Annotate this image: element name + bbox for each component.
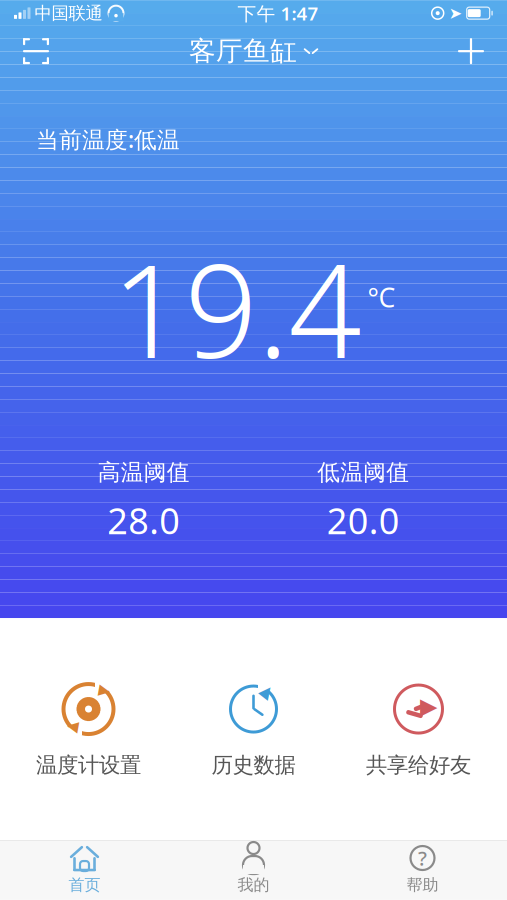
staticText: ▲ (100, 683, 111, 699)
staticText: 我的 (237, 875, 269, 895)
button[interactable]: 客厅鱼缸 (179, 29, 328, 73)
button[interactable]: ▶ (336, 672, 501, 786)
staticText: 20.0 (327, 496, 400, 544)
staticText: °C (367, 279, 395, 315)
button[interactable]: ▲ (6, 672, 171, 786)
staticText: 历史数据 (211, 752, 295, 778)
staticText: ? (418, 845, 427, 871)
staticText: 客厅鱼缸 (189, 35, 297, 68)
staticText: ▲ (66, 719, 77, 735)
button[interactable]: 首页 (0, 840, 169, 900)
button[interactable]: 添加设备 (449, 29, 493, 73)
staticText: 中国联通 (34, 2, 102, 24)
staticText: 首页 (68, 875, 100, 895)
staticText: 下午 1:47 (238, 1, 319, 26)
staticText: 帮助 (406, 875, 438, 895)
button[interactable]: ? (338, 840, 507, 900)
button[interactable]: 我的 (169, 840, 338, 900)
staticText: 温度计设置 (36, 752, 141, 778)
staticText: 共享给好友 (366, 752, 471, 778)
staticText: 28.0 (107, 496, 180, 544)
staticText: 高温阈值 (98, 458, 190, 486)
button[interactable]: ▲ (171, 672, 336, 786)
staticText: ▲ (261, 682, 273, 700)
staticText: 低温阈值 (317, 458, 409, 486)
button[interactable]: 扫一扫 (14, 29, 58, 73)
staticText: 当前温度:低温 (36, 124, 180, 154)
staticText: ▶ (420, 693, 437, 719)
staticText: 19.4 (111, 223, 361, 393)
staticText: ➤ (449, 4, 462, 22)
